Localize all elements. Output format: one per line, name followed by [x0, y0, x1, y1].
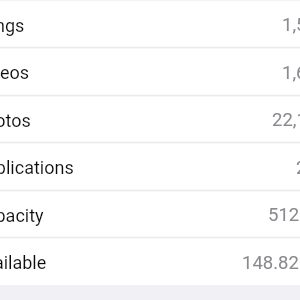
staticText: 148.82 GB [242, 252, 300, 274]
staticText: 1,543 [282, 14, 300, 36]
button[interactable]: Videos [0, 48, 300, 95]
button[interactable]: Songs [0, 1, 300, 47]
staticText: Photos [0, 110, 31, 131]
staticText: 512 GB [268, 204, 300, 226]
button[interactable]: Photos [0, 96, 300, 142]
staticText: Videos [0, 62, 30, 83]
button[interactable]: Available [0, 238, 300, 285]
staticText: 1,640 [282, 62, 300, 84]
staticText: Capacity [0, 205, 44, 226]
button[interactable]: Applications [0, 143, 300, 190]
staticText: Available [0, 252, 47, 273]
staticText: 253 [296, 157, 300, 179]
button[interactable]: Capacity [0, 191, 300, 237]
staticText: Songs [0, 15, 25, 36]
staticText: Applications [0, 157, 74, 178]
staticText: 22,148 [272, 109, 300, 131]
